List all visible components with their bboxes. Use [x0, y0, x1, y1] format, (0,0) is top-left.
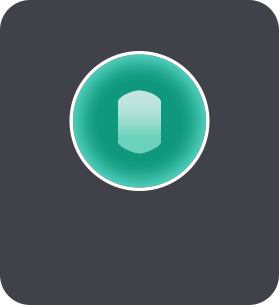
button[interactable]: Start	[69, 51, 209, 191]
